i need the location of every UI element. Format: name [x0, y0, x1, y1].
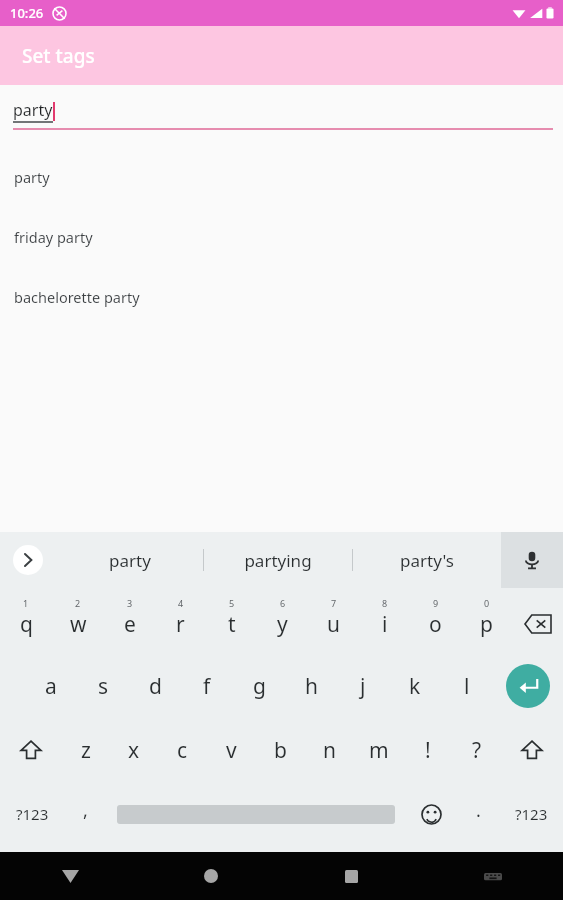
staticText: m [369, 736, 389, 765]
staticText: f [203, 672, 211, 701]
staticText: Set tags [22, 43, 95, 69]
staticText: d [149, 672, 162, 701]
staticText: i [382, 610, 388, 639]
button[interactable]: , [64, 782, 106, 846]
staticText: 1 [23, 597, 29, 609]
button[interactable]: bachelorette party [0, 267, 563, 327]
button[interactable]: ?123 [499, 782, 563, 846]
staticText: q [20, 610, 33, 639]
staticText: e [124, 610, 136, 639]
staticText: party's [400, 549, 454, 572]
staticText: u [327, 610, 340, 639]
button[interactable]: Enter [493, 654, 563, 718]
staticText: 8 [382, 597, 388, 609]
button[interactable]: 5 [206, 588, 257, 654]
staticText: j [360, 672, 366, 701]
button[interactable]: 6 [257, 588, 308, 654]
button[interactable]: a [24, 654, 77, 718]
staticText: ? [472, 736, 482, 765]
button[interactable]: c [158, 718, 207, 782]
button[interactable]: partying [204, 532, 352, 588]
staticText: 6 [280, 597, 286, 609]
staticText: ! [425, 736, 431, 765]
staticText: o [429, 610, 442, 639]
button[interactable]: b [256, 718, 305, 782]
staticText: 10:26 [10, 4, 44, 22]
button[interactable]: v [207, 718, 256, 782]
button[interactable]: Back [0, 852, 140, 900]
staticText: 4 [178, 597, 184, 609]
staticText: ?123 [16, 804, 49, 824]
staticText: 7 [331, 597, 337, 609]
button[interactable]: k [389, 654, 441, 718]
button[interactable]: party [56, 532, 203, 588]
button[interactable]: 4 [155, 588, 206, 654]
button[interactable]: Emoji [405, 782, 457, 846]
staticText: n [323, 736, 336, 765]
staticText: g [253, 672, 266, 701]
button[interactable]: g [233, 654, 285, 718]
staticText: y [277, 610, 288, 639]
staticText: v [226, 736, 237, 765]
button[interactable]: 3 [104, 588, 155, 654]
staticText: 3 [127, 597, 133, 609]
button[interactable]: 0 [461, 588, 512, 654]
staticText: b [274, 736, 287, 765]
button[interactable]: More suggestions [0, 532, 56, 588]
button[interactable]: ? [452, 718, 501, 782]
staticText: ?123 [515, 804, 548, 824]
staticText: 0 [484, 597, 490, 609]
staticText: k [409, 672, 421, 701]
button[interactable]: 1 [0, 588, 52, 654]
button[interactable]: Space [106, 782, 405, 846]
staticText: , [83, 798, 88, 823]
button[interactable]: n [305, 718, 354, 782]
button[interactable]: ! [403, 718, 452, 782]
button[interactable]: party [0, 147, 563, 207]
staticText: 9 [433, 597, 439, 609]
button[interactable]: Switch keyboard [422, 852, 563, 900]
staticText: bachelorette party [14, 287, 140, 307]
button[interactable]: 8 [359, 588, 410, 654]
button[interactable]: j [337, 654, 389, 718]
staticText: . [476, 798, 481, 823]
button[interactable]: . [457, 782, 499, 846]
button[interactable]: friday party [0, 207, 563, 267]
button[interactable]: Shift [501, 718, 563, 782]
staticText: l [464, 672, 470, 701]
staticText: 5 [229, 597, 235, 609]
staticText: partying [244, 549, 312, 572]
button[interactable]: Home [140, 852, 281, 900]
button[interactable]: ?123 [0, 782, 64, 846]
staticText: a [45, 672, 57, 701]
button[interactable]: l [441, 654, 493, 718]
button[interactable]: Recents [281, 852, 422, 900]
button[interactable]: Voice input [501, 532, 563, 588]
staticText: s [98, 672, 109, 701]
button[interactable]: party's [353, 532, 501, 588]
button[interactable]: 9 [410, 588, 461, 654]
button[interactable]: m [354, 718, 403, 782]
staticText: p [480, 610, 493, 639]
button[interactable]: Shift [0, 718, 62, 782]
staticText: w [70, 610, 87, 639]
button[interactable]: f [181, 654, 233, 718]
staticText: party [14, 167, 50, 187]
button[interactable]: Backspace [512, 588, 563, 654]
button[interactable]: z [62, 718, 110, 782]
button[interactable]: h [285, 654, 337, 718]
button[interactable]: 2 [52, 588, 104, 654]
staticText: z [81, 736, 91, 765]
staticText: c [177, 736, 188, 765]
staticText: friday party [14, 227, 93, 247]
button[interactable]: x [110, 718, 158, 782]
button[interactable]: s [77, 654, 129, 718]
staticText: t [228, 610, 236, 639]
staticText: x [128, 736, 140, 765]
staticText: 2 [75, 597, 81, 609]
staticText: party [13, 99, 53, 121]
button[interactable]: 7 [308, 588, 359, 654]
staticText: h [305, 672, 318, 701]
button[interactable]: d [129, 654, 181, 718]
staticText: r [176, 610, 185, 639]
